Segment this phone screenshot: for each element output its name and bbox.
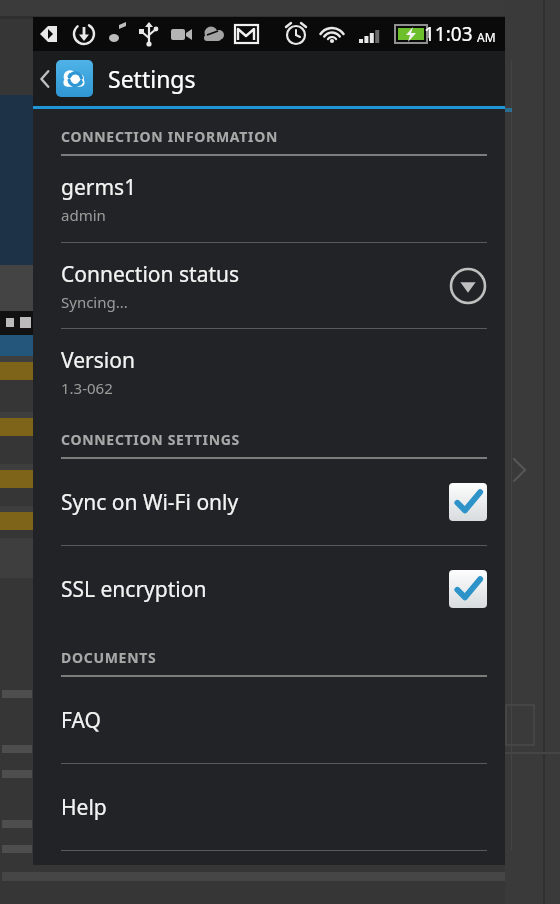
- button[interactable]: Help: [33, 764, 505, 850]
- button[interactable]: SSL encryption: [33, 546, 505, 632]
- button[interactable]: Connection status: [33, 243, 505, 328]
- button[interactable]: Version: [33, 329, 505, 414]
- staticText: 1.3-062: [61, 378, 113, 398]
- staticText: germs1: [61, 173, 137, 202]
- staticText: admin: [61, 205, 106, 225]
- staticText: SSL encryption: [61, 575, 449, 604]
- staticText: 11:03: [424, 21, 473, 47]
- button[interactable]: germs1: [33, 156, 505, 242]
- staticText: Version: [61, 346, 135, 375]
- button[interactable]: Sync on Wi-Fi only: [33, 459, 505, 545]
- staticText: Syncing...: [61, 292, 128, 312]
- staticText: CONNECTION SETTINGS: [61, 430, 240, 449]
- button[interactable]: Navigate up, Settings: [33, 51, 505, 106]
- staticText: FAQ: [61, 706, 101, 735]
- staticText: Connection status: [61, 260, 240, 289]
- staticText: CONNECTION INFORMATION: [61, 127, 279, 146]
- staticText: Settings: [108, 63, 196, 94]
- staticText: AM: [477, 29, 496, 45]
- button[interactable]: FAQ: [33, 677, 505, 763]
- staticText: Help: [61, 793, 107, 822]
- staticText: Sync on Wi-Fi only: [61, 488, 449, 517]
- other: Expand: [449, 267, 487, 305]
- staticText: DOCUMENTS: [61, 648, 157, 667]
